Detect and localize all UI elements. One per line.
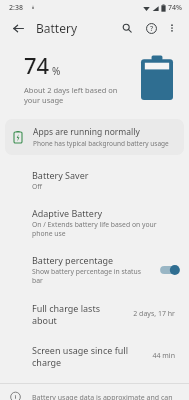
staticText: 74%: [168, 3, 182, 13]
staticText: Off: [32, 182, 42, 191]
staticText: On / Extends battery life based on your …: [32, 220, 175, 238]
staticText: Apps are running normally: [33, 126, 140, 138]
staticText: 44 min: [152, 351, 175, 361]
button[interactable]: Apps are running normally: [5, 119, 184, 155]
button[interactable]: Help: [141, 18, 161, 38]
button[interactable]: Search: [117, 18, 137, 38]
staticText: Full charge lasts about: [32, 302, 127, 326]
staticText: Battery Saver: [32, 169, 89, 181]
staticText: Screen usage since full charge: [32, 344, 146, 368]
button[interactable]: Battery percentage: [0, 246, 189, 293]
staticText: %: [52, 64, 61, 78]
staticText: Battery percentage: [32, 254, 114, 266]
staticText: Battery usage data is approximate and ca…: [32, 393, 175, 400]
staticText: Phone has typical background battery usa…: [33, 139, 169, 148]
staticText: Battery: [36, 20, 78, 36]
staticText: 2:38: [9, 3, 23, 13]
staticText: 2 days, 17 hr: [133, 309, 175, 319]
button[interactable]: Full charge lasts about: [0, 293, 189, 335]
button[interactable]: Battery Saver: [0, 161, 189, 199]
button[interactable]: More options: [163, 19, 181, 37]
button[interactable]: Screen usage since full charge: [0, 335, 189, 377]
staticText: Adaptive Battery: [32, 207, 103, 219]
staticText: Show battery percentage in status bar: [32, 267, 153, 285]
staticText: 74: [24, 50, 50, 80]
button[interactable]: Adaptive Battery: [0, 199, 189, 246]
staticText: ?: [150, 24, 154, 34]
staticText: About 2 days left based on your usage: [24, 85, 135, 105]
button[interactable]: Back: [8, 18, 28, 38]
